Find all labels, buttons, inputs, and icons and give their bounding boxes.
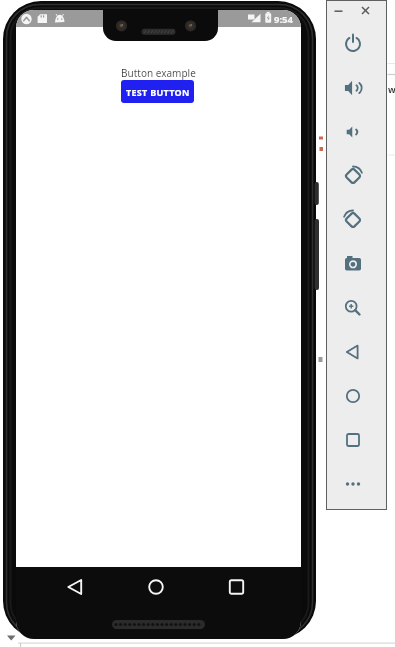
button[interactable] bbox=[337, 380, 369, 412]
staticText: w bbox=[388, 83, 395, 95]
button[interactable] bbox=[337, 292, 369, 324]
staticText: 9:54 bbox=[274, 13, 293, 26]
button[interactable] bbox=[359, 4, 372, 17]
button[interactable] bbox=[332, 4, 345, 17]
button[interactable]: TEST BUTTON bbox=[121, 80, 194, 103]
button[interactable] bbox=[337, 424, 369, 456]
button[interactable] bbox=[222, 573, 250, 601]
button[interactable] bbox=[337, 248, 369, 280]
staticText: Button example bbox=[121, 66, 196, 80]
button[interactable] bbox=[142, 573, 170, 601]
button[interactable] bbox=[337, 160, 369, 192]
button[interactable] bbox=[337, 204, 369, 236]
button[interactable] bbox=[337, 336, 369, 368]
button[interactable] bbox=[337, 72, 369, 104]
button[interactable] bbox=[337, 116, 369, 148]
button[interactable] bbox=[337, 468, 369, 500]
button[interactable] bbox=[61, 573, 89, 601]
staticText: TEST BUTTON bbox=[126, 86, 190, 98]
button[interactable] bbox=[337, 28, 369, 60]
